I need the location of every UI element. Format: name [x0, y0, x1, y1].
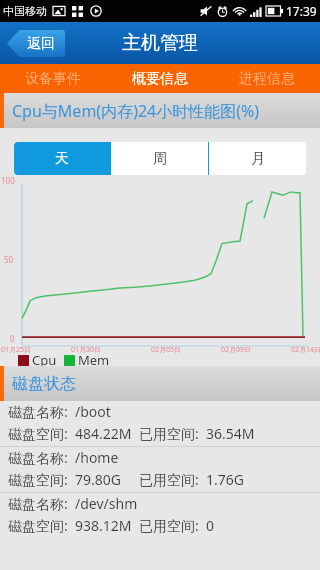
staticText: 主机管理 — [122, 31, 198, 55]
staticText: 已用空间: 36.54M — [139, 424, 255, 443]
staticText: 02月05日 — [151, 345, 182, 355]
staticText: 17:39 — [286, 3, 317, 19]
staticText: 周 — [153, 150, 167, 168]
staticText: Cpu与Mem(内存)24小时性能图(%) — [12, 100, 260, 122]
button[interactable]: 天 — [14, 142, 110, 175]
staticText: 返回 — [27, 35, 55, 53]
staticText: 02月09日 — [221, 345, 252, 355]
staticText: Cpu — [32, 351, 57, 369]
staticText: 100 — [1, 175, 15, 186]
staticText: 磁盘空间: 484.22M — [8, 424, 132, 443]
staticText: Mem — [78, 351, 110, 369]
staticText: 磁盘状态 — [12, 374, 76, 394]
button[interactable]: 进程信息 — [213, 64, 320, 93]
staticText: 01月30日 — [71, 345, 102, 355]
button[interactable]: 概要信息 — [106, 64, 213, 93]
staticText: 中国移动 — [3, 4, 47, 18]
staticText: 已用空间: 0 — [139, 516, 215, 535]
staticText: 月 — [251, 150, 265, 168]
button[interactable]: 周 — [111, 142, 208, 175]
staticText: 概要信息 — [132, 70, 188, 88]
staticText: 01月25日 — [1, 345, 32, 355]
button[interactable]: 设备事件 — [0, 64, 106, 93]
staticText: 进程信息 — [239, 70, 295, 88]
staticText: 设备事件 — [25, 70, 81, 88]
staticText: 磁盘名称: /boot — [8, 402, 111, 421]
button[interactable]: 返回 — [7, 30, 65, 57]
staticText: 02月14日 — [291, 345, 320, 355]
staticText: 磁盘名称: /dev/shm — [8, 494, 138, 513]
staticText: 已用空间: 1.76G — [139, 470, 244, 489]
button[interactable]: 磁盘名称: /boot — [0, 401, 320, 447]
button[interactable]: 磁盘名称: /home — [0, 447, 320, 493]
button[interactable]: 磁盘名称: /dev/shm — [0, 493, 320, 539]
staticText: 50 — [4, 254, 14, 265]
staticText: 天 — [55, 150, 69, 168]
staticText: 磁盘名称: /home — [8, 448, 119, 467]
staticText: 0 — [10, 333, 15, 344]
staticText: 磁盘空间: 938.12M — [8, 516, 132, 535]
button[interactable]: 月 — [209, 142, 306, 175]
staticText: 磁盘空间: 79.80G — [8, 470, 122, 489]
